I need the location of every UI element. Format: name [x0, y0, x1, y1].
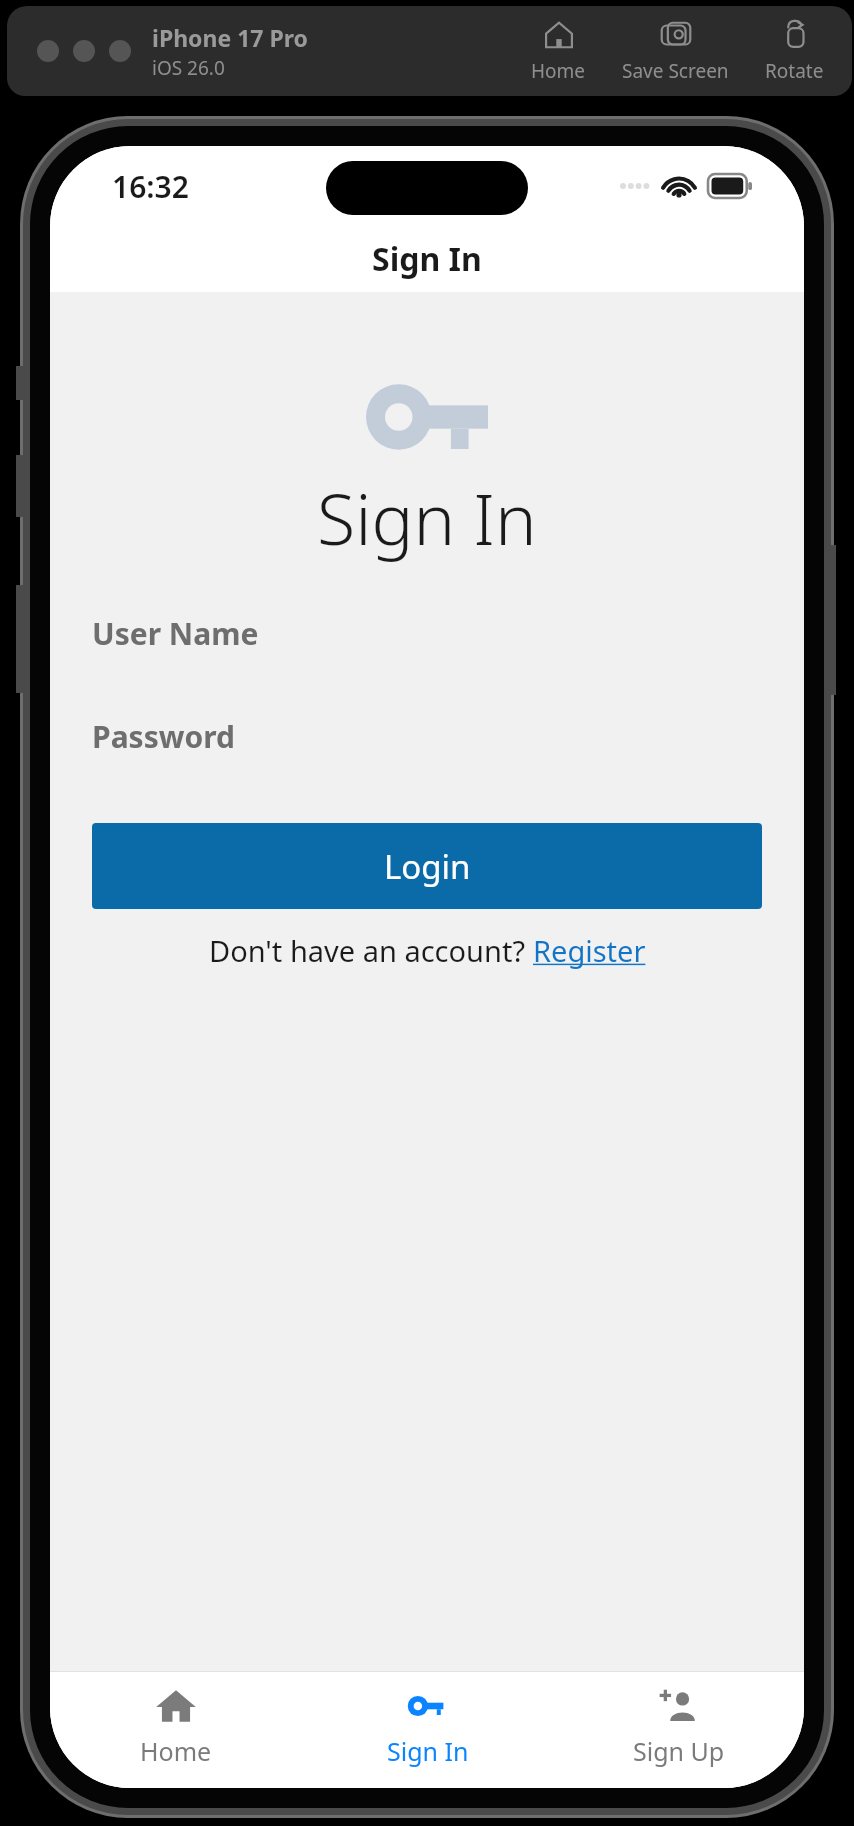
staticText: Home: [140, 1734, 212, 1768]
staticText: Sign In: [317, 470, 537, 565]
staticText: Don't have an account?: [209, 931, 533, 970]
staticText: iPhone 17 Pro: [152, 22, 308, 53]
button[interactable]: Login: [92, 823, 762, 909]
staticText: Rotate: [765, 58, 824, 84]
button[interactable]: Sign In: [302, 1672, 553, 1780]
staticText: Sign Up: [633, 1734, 725, 1768]
button[interactable]: Register: [533, 931, 646, 970]
button[interactable]: User Name: [92, 613, 259, 654]
staticText: Sign In: [372, 237, 482, 281]
staticText: Home: [531, 58, 586, 84]
staticText: Save Screen: [622, 58, 729, 84]
button[interactable]: Password: [92, 716, 235, 757]
button[interactable]: Save Screen: [618, 18, 733, 84]
staticText: Sign In: [387, 1734, 469, 1768]
button[interactable]: Rotate: [761, 18, 828, 84]
button[interactable]: Home: [50, 1672, 302, 1780]
staticText: Login: [384, 844, 471, 889]
staticText: 16:32: [112, 166, 189, 207]
button[interactable]: Home: [527, 18, 590, 84]
staticText: iOS 26.0: [152, 55, 225, 81]
button[interactable]: Sign Up: [553, 1672, 804, 1780]
